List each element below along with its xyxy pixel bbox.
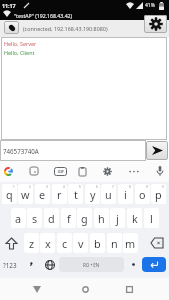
button[interactable]: i [118, 184, 133, 204]
button[interactable]: l [144, 208, 159, 228]
button[interactable] [146, 141, 168, 160]
staticText: q [6, 187, 13, 202]
button[interactable]: e [35, 184, 50, 204]
button[interactable]: j [110, 208, 125, 228]
staticText: a [15, 211, 22, 226]
button[interactable] [27, 280, 47, 298]
button[interactable]: o [135, 184, 150, 204]
button[interactable]: ?123 [0, 258, 19, 272]
button[interactable]: v [73, 233, 88, 253]
button[interactable]: c [57, 233, 72, 253]
button[interactable]: t [68, 184, 83, 204]
staticText: r [57, 187, 62, 202]
staticText: 7 [112, 185, 114, 189]
staticText: 9 [146, 185, 148, 189]
staticText: e [39, 187, 46, 202]
staticText: 41% [145, 2, 155, 9]
button[interactable] [119, 280, 139, 298]
button[interactable]: y [85, 184, 100, 204]
staticText: c [62, 236, 68, 251]
staticText: j [116, 211, 119, 226]
button[interactable]: s [27, 208, 42, 228]
button[interactable] [147, 233, 167, 253]
button[interactable] [99, 161, 116, 182]
staticText: (connected, 192.168.43.190:8080) [23, 25, 108, 32]
staticText: Hello, Server [4, 40, 37, 47]
staticText: f [67, 211, 71, 226]
button[interactable]: x [40, 233, 55, 253]
staticText: 2 [29, 185, 31, 189]
staticText: g [81, 211, 88, 226]
button[interactable]: a [11, 208, 26, 228]
staticText: u [105, 187, 112, 202]
staticText: t [74, 187, 78, 202]
staticText: m [125, 236, 136, 251]
staticText: b [94, 236, 101, 251]
staticText: p [155, 187, 162, 202]
button[interactable] [41, 257, 58, 272]
staticText: 6 [96, 185, 98, 189]
button[interactable] [125, 161, 143, 182]
button[interactable] [2, 233, 21, 253]
button[interactable] [0, 161, 169, 182]
button[interactable] [26, 161, 42, 182]
button[interactable]: n [107, 233, 122, 253]
button[interactable]: h [94, 208, 109, 228]
staticText: 746573740A [3, 147, 39, 155]
staticText: k [132, 211, 138, 226]
staticText: d [48, 211, 55, 226]
button[interactable]: RO • EN [59, 257, 124, 272]
button[interactable] [23, 257, 39, 272]
staticText: "testAP" (192.168.43.42) [14, 12, 73, 19]
staticText: o [139, 187, 146, 202]
staticText: i [124, 187, 127, 202]
button[interactable]: b [90, 233, 105, 253]
staticText: 0 [162, 185, 164, 189]
staticText: GIF [58, 169, 64, 174]
button[interactable] [4, 21, 19, 34]
staticText: 8 [129, 185, 131, 189]
button[interactable] [0, 161, 18, 182]
button[interactable] [144, 15, 167, 33]
staticText: w [21, 187, 30, 202]
button[interactable]: 746573740A [0, 140, 146, 161]
staticText: l [150, 211, 153, 226]
staticText: 4 [63, 185, 65, 189]
staticText: y [90, 187, 96, 202]
button[interactable] [126, 257, 140, 272]
staticText: x [45, 236, 51, 251]
button[interactable]: k [127, 208, 142, 228]
staticText: z [29, 236, 35, 251]
button[interactable] [75, 161, 91, 182]
button[interactable]: z [24, 233, 39, 253]
staticText: RO • EN [83, 262, 100, 268]
staticText: Hello, Client [4, 49, 35, 56]
staticText: ?123 [3, 261, 17, 270]
staticText: 5 [79, 185, 81, 189]
button[interactable]: r [52, 184, 67, 204]
button[interactable] [142, 257, 166, 272]
button[interactable] [151, 161, 169, 182]
staticText: n [111, 236, 118, 251]
staticText: 11:17 [2, 2, 16, 9]
staticText: 3 [46, 185, 48, 189]
button[interactable]: GIF [54, 167, 67, 176]
button[interactable]: m [123, 233, 138, 253]
staticText: h [98, 211, 105, 226]
staticText: 1 [13, 185, 15, 189]
button[interactable] [75, 280, 95, 298]
button[interactable]: u [101, 184, 116, 204]
staticText: s [32, 211, 38, 226]
button[interactable]: p [151, 184, 166, 204]
staticText: v [78, 236, 84, 251]
button[interactable]: q [2, 184, 17, 204]
button[interactable]: f [61, 208, 76, 228]
button[interactable]: g [77, 208, 92, 228]
button[interactable]: d [44, 208, 59, 228]
button[interactable]: w [18, 184, 33, 204]
